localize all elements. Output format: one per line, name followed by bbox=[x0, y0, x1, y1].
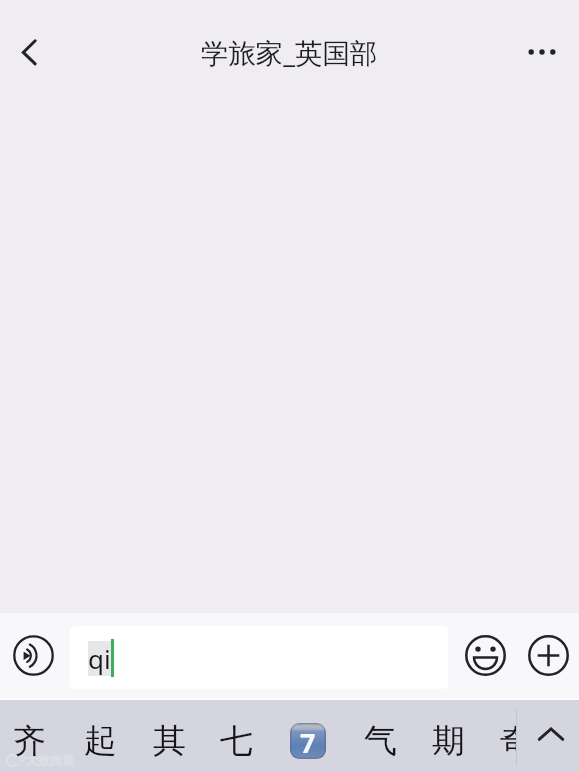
button[interactable]: 起 bbox=[76, 700, 124, 772]
button[interactable]: Back bbox=[1, 24, 57, 80]
button[interactable]: More options bbox=[514, 24, 570, 80]
button[interactable]: Voice input bbox=[13, 635, 54, 676]
button[interactable]: 7 bbox=[290, 723, 326, 759]
button[interactable]: Emoji bbox=[465, 635, 506, 676]
staticText: 七 bbox=[220, 720, 253, 762]
staticText: 7 bbox=[300, 724, 316, 759]
button[interactable]: 期 bbox=[424, 700, 472, 772]
staticText: 期 bbox=[432, 720, 465, 762]
staticText: 起 bbox=[84, 720, 117, 762]
staticText: 大数跨境 bbox=[26, 753, 74, 768]
button[interactable]: 其 bbox=[145, 700, 193, 772]
staticText: 其 bbox=[153, 720, 186, 762]
staticText: 齐 bbox=[13, 720, 46, 762]
button[interactable]: qi bbox=[70, 626, 448, 689]
button[interactable]: 齐 bbox=[5, 700, 53, 772]
button[interactable]: 七 bbox=[212, 700, 260, 772]
button[interactable]: More functions bbox=[528, 635, 569, 676]
staticText: 学旅家_英国部 bbox=[201, 34, 378, 71]
staticText: 气 bbox=[364, 720, 397, 762]
staticText: 奇 bbox=[500, 720, 517, 762]
staticText: qi bbox=[88, 641, 111, 676]
button[interactable]: 奇 bbox=[494, 700, 517, 772]
button[interactable]: 气 bbox=[356, 700, 404, 772]
button[interactable]: Collapse keyboard bbox=[527, 710, 575, 758]
